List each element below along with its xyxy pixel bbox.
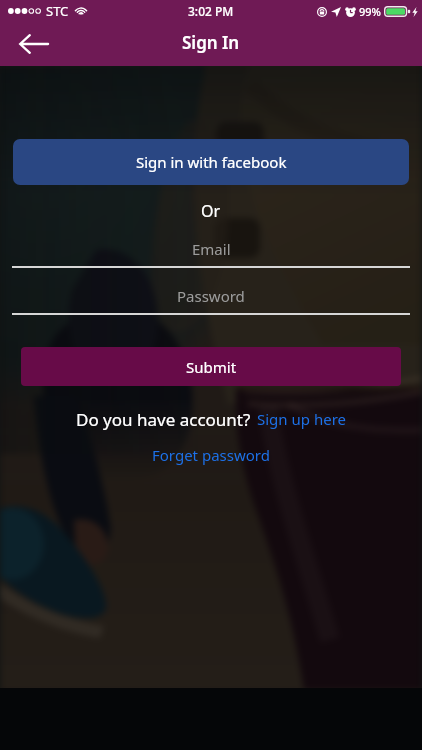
staticText: 3:02 PM	[188, 3, 234, 19]
staticText: Email	[192, 239, 231, 259]
staticText: Do you have account?	[76, 408, 251, 430]
staticText: Submit	[186, 357, 237, 377]
staticText: Sign up here	[257, 409, 346, 429]
staticText: 99%	[359, 4, 381, 19]
button[interactable]: Submit	[21, 347, 401, 386]
button[interactable]: Back	[13, 23, 55, 65]
button[interactable]: Sign up here	[257, 409, 346, 429]
staticText: Or	[201, 200, 221, 222]
staticText: Sign In	[182, 31, 240, 54]
staticText: Forget password	[152, 445, 270, 465]
button[interactable]: Email	[12, 237, 410, 261]
staticText: Password	[177, 286, 245, 306]
staticText: STC	[46, 2, 69, 20]
button[interactable]: Forget password	[152, 445, 270, 465]
staticText: Sign in with facebook	[136, 152, 287, 172]
button[interactable]: Password	[12, 284, 410, 308]
button[interactable]: Sign in with facebook	[13, 139, 409, 185]
